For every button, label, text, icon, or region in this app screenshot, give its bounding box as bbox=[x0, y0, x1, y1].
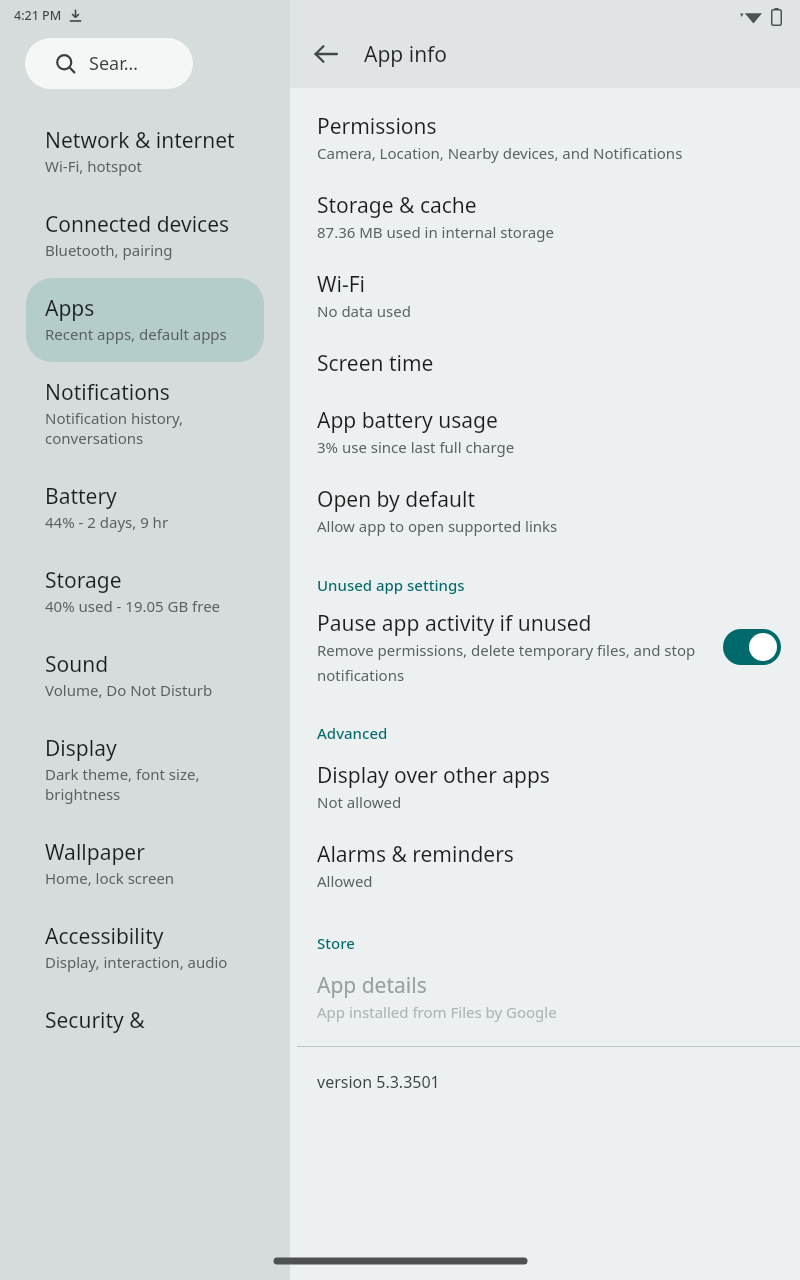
staticText: Volume, Do Not Disturb bbox=[45, 680, 213, 700]
staticText: Network & internet bbox=[45, 126, 235, 155]
staticText: Sound bbox=[45, 650, 109, 679]
staticText: Wallpaper bbox=[45, 838, 145, 867]
staticText: Apps bbox=[45, 294, 95, 323]
staticText: 44% - 2 days, 9 hr bbox=[45, 512, 169, 532]
button[interactable]: Connected devices bbox=[0, 194, 290, 278]
staticText: Unused app settings bbox=[317, 575, 465, 595]
button[interactable]: Security & bbox=[0, 990, 290, 1053]
button[interactable]: Battery bbox=[0, 466, 290, 550]
button[interactable]: Notifications bbox=[0, 362, 290, 466]
staticText: 87.36 MB used in internal storage bbox=[317, 222, 554, 242]
button[interactable]: Apps bbox=[26, 278, 264, 362]
button[interactable]: App battery usage bbox=[290, 392, 800, 471]
staticText: Screen time bbox=[317, 349, 434, 378]
staticText: Display bbox=[45, 734, 117, 763]
staticText: Alarms & reminders bbox=[317, 840, 514, 869]
button[interactable]: Accessibility bbox=[0, 906, 290, 990]
button[interactable]: Storage bbox=[0, 550, 290, 634]
staticText: Battery bbox=[45, 482, 117, 511]
staticText: 4:21 PM bbox=[14, 7, 62, 24]
staticText: Storage bbox=[45, 566, 122, 595]
staticText: Notifications bbox=[45, 378, 170, 407]
button[interactable]: App details bbox=[290, 957, 800, 1036]
button[interactable]: Sear… bbox=[25, 38, 193, 89]
staticText: Security & bbox=[45, 1006, 145, 1035]
staticText: No data used bbox=[317, 301, 411, 321]
button[interactable]: Pause app activity if unused toggle bbox=[723, 629, 781, 665]
staticText: version 5.3.3501 bbox=[317, 1071, 440, 1093]
staticText: App details bbox=[317, 971, 427, 1000]
staticText: Open by default bbox=[317, 485, 476, 514]
staticText: Allowed bbox=[317, 871, 373, 891]
staticText: Remove permissions, delete temporary fil… bbox=[317, 640, 707, 685]
staticText: Wi-Fi, hotspot bbox=[45, 156, 142, 176]
button[interactable]: Alarms & reminders bbox=[290, 826, 800, 905]
button[interactable]: Back bbox=[304, 32, 348, 76]
staticText: App info bbox=[364, 40, 448, 69]
staticText: Notification history, conversations bbox=[45, 408, 270, 448]
staticText: Dark theme, font size, brightness bbox=[45, 764, 270, 804]
button[interactable]: Permissions bbox=[290, 98, 800, 177]
button[interactable]: Pause app activity if unused bbox=[290, 599, 800, 695]
button[interactable]: Wallpaper bbox=[0, 822, 290, 906]
staticText: Accessibility bbox=[45, 922, 164, 951]
staticText: Not allowed bbox=[317, 792, 402, 812]
staticText: Recent apps, default apps bbox=[45, 324, 227, 344]
staticText: Display over other apps bbox=[317, 761, 550, 790]
staticText: Storage & cache bbox=[317, 191, 477, 220]
staticText: Sear… bbox=[89, 51, 138, 76]
staticText: Camera, Location, Nearby devices, and No… bbox=[317, 143, 683, 163]
staticText: Display, interaction, audio bbox=[45, 952, 228, 972]
staticText: Advanced bbox=[317, 723, 388, 743]
button[interactable]: Sound bbox=[0, 634, 290, 718]
staticText: Store bbox=[317, 933, 355, 953]
button[interactable]: Display over other apps bbox=[290, 747, 800, 826]
button[interactable]: Display bbox=[0, 718, 290, 822]
staticText: 40% used - 19.05 GB free bbox=[45, 596, 221, 616]
button[interactable]: Network & internet bbox=[0, 110, 290, 194]
staticText: Bluetooth, pairing bbox=[45, 240, 173, 260]
staticText: 3% use since last full charge bbox=[317, 437, 515, 457]
staticText: Allow app to open supported links bbox=[317, 516, 558, 536]
staticText: Home, lock screen bbox=[45, 868, 175, 888]
staticText: Wi-Fi bbox=[317, 270, 366, 299]
staticText: Connected devices bbox=[45, 210, 230, 239]
staticText: App battery usage bbox=[317, 406, 498, 435]
button[interactable]: Storage & cache bbox=[290, 177, 800, 256]
staticText: App installed from Files by Google bbox=[317, 1002, 557, 1022]
button[interactable]: Open by default bbox=[290, 471, 800, 550]
button[interactable]: Wi-Fi bbox=[290, 256, 800, 335]
button[interactable]: Screen time bbox=[290, 335, 800, 392]
staticText: Permissions bbox=[317, 112, 437, 141]
staticText: Pause app activity if unused bbox=[317, 609, 592, 638]
